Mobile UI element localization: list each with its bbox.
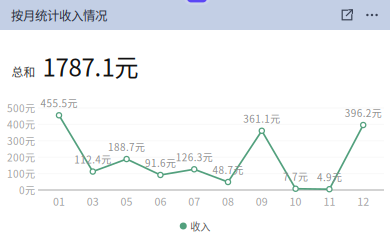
button[interactable]: More options [360, 0, 384, 30]
staticText: 1787.1元 [42, 49, 138, 83]
staticText: 03 [87, 193, 99, 209]
staticText: 188.7元 [108, 140, 145, 154]
staticText: 06 [154, 193, 166, 209]
staticText: 126.3元 [176, 150, 213, 164]
staticText: 200元 [7, 150, 35, 164]
staticText: 收入 [190, 219, 210, 233]
staticText: 按月统计收入情况 [11, 6, 107, 24]
staticText: 总和 [11, 63, 35, 80]
staticText: 400元 [7, 117, 35, 132]
staticText: 12 [357, 193, 369, 209]
button[interactable]: Share [334, 0, 360, 30]
staticText: 08 [222, 193, 234, 209]
staticText: 112.4元 [74, 152, 111, 166]
staticText: 91.6元 [145, 155, 176, 170]
staticText: 500元 [7, 100, 35, 115]
staticText: 0元 [19, 182, 35, 197]
staticText: 11 [323, 193, 335, 209]
staticText: 300元 [7, 133, 35, 148]
staticText: 4.9元 [317, 170, 342, 184]
staticText: 05 [121, 193, 133, 209]
staticText: 07 [188, 193, 200, 209]
staticText: 09 [256, 193, 268, 209]
staticText: 396.2元 [345, 105, 382, 120]
staticText: 48.7元 [212, 162, 243, 177]
staticText: 7.7元 [283, 169, 308, 184]
staticText: 100元 [7, 166, 35, 181]
staticText: 455.5元 [40, 96, 77, 110]
staticText: 10 [290, 193, 302, 209]
staticText: 361.1元 [243, 111, 280, 126]
staticText: 01 [53, 193, 65, 209]
